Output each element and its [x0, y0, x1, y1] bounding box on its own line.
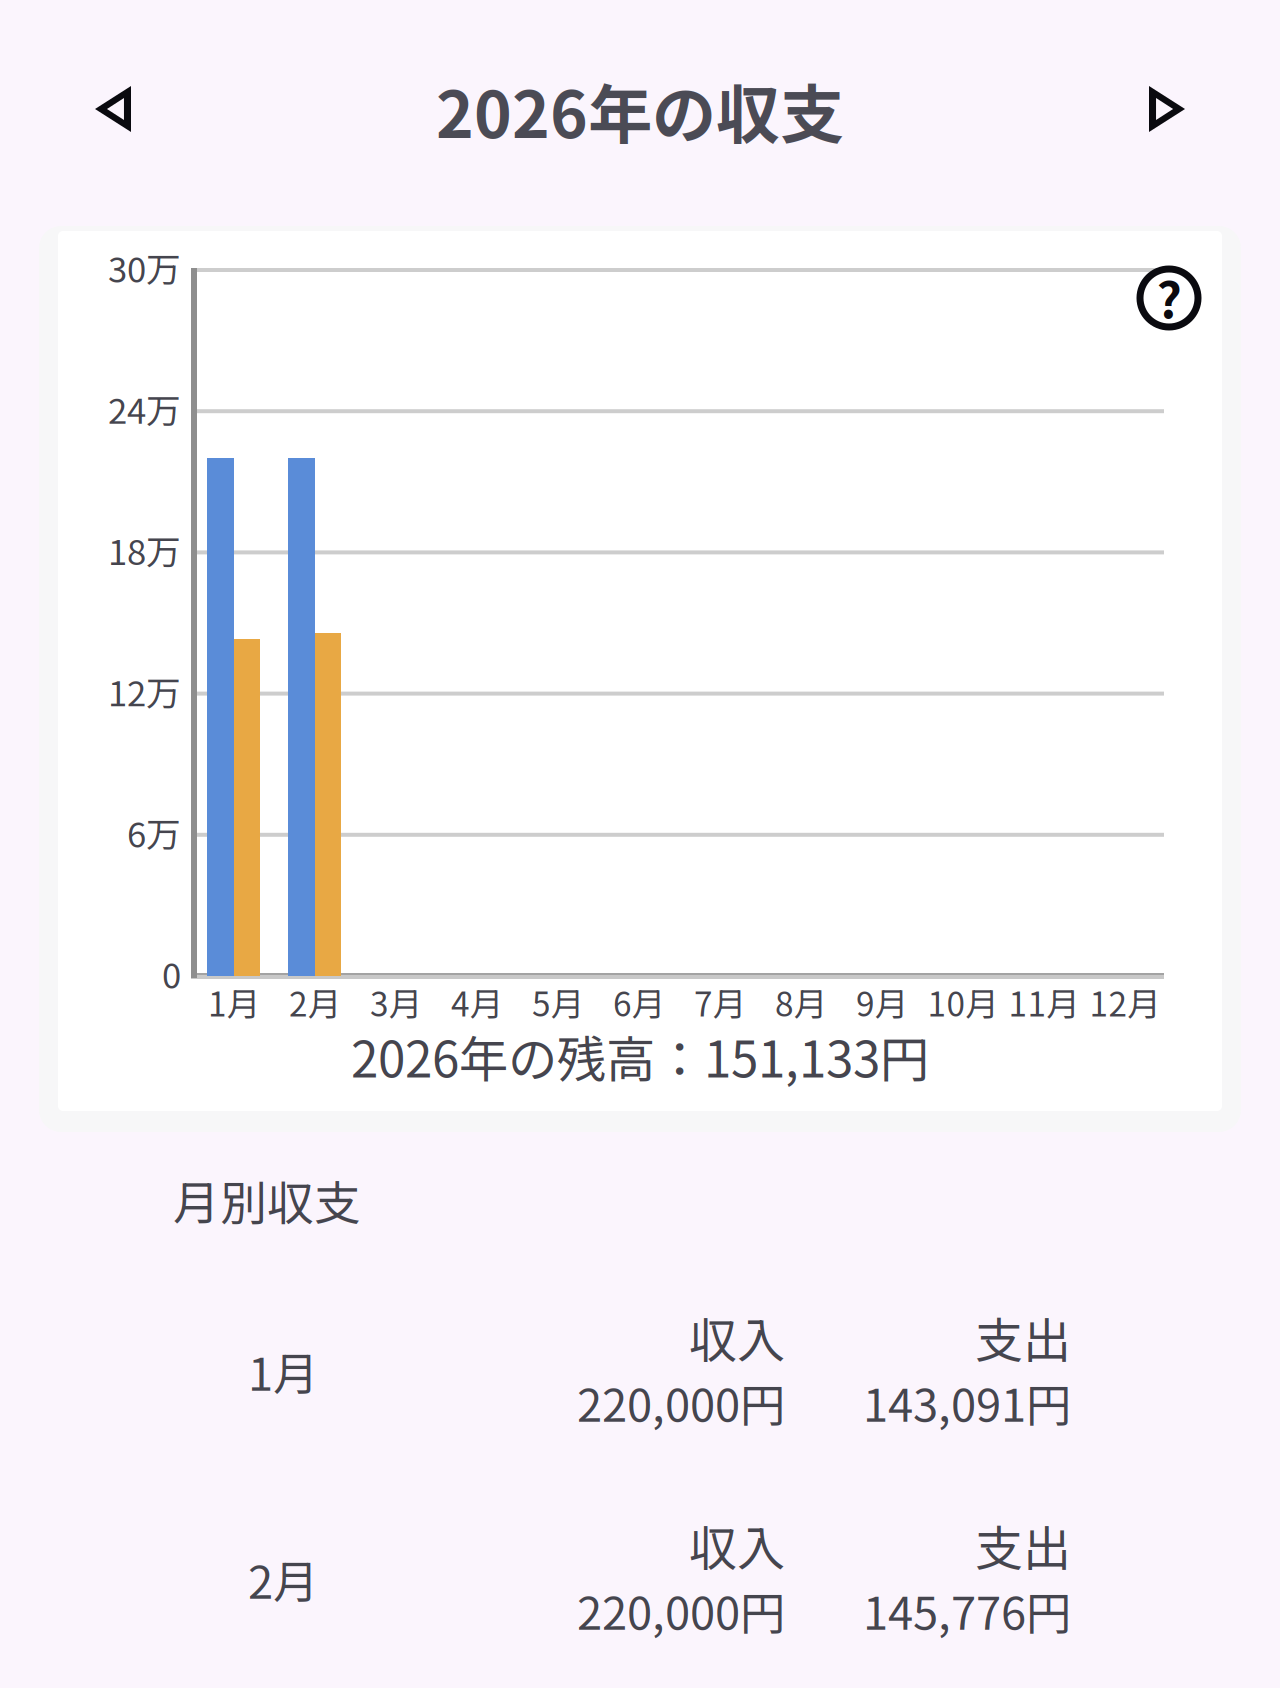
staticText: 11月	[1008, 978, 1079, 1026]
staticText: 24万	[108, 384, 181, 434]
staticText: 支出	[975, 1510, 1071, 1580]
staticText: 1月	[208, 978, 260, 1026]
staticText: 30万	[108, 242, 181, 293]
staticText: 10月	[927, 978, 998, 1026]
staticText: 収入	[689, 1510, 785, 1580]
button[interactable]: Next year	[1107, 49, 1227, 169]
staticText: 220,000円	[577, 1369, 785, 1435]
staticText: 2026年の収支	[436, 64, 844, 156]
button[interactable]: 2月	[0, 0, 1280, 170]
staticText: 4月	[451, 978, 503, 1026]
staticText: 5月	[532, 978, 584, 1026]
staticText: 6月	[613, 978, 665, 1026]
staticText: 2月	[248, 1546, 318, 1612]
staticText: 7月	[694, 978, 746, 1026]
staticText: 9月	[856, 978, 908, 1026]
staticText: 2026年の残高：151,133円	[351, 1020, 929, 1092]
button[interactable]: Help	[1129, 258, 1209, 338]
staticText: 収入	[689, 1302, 785, 1372]
button[interactable]: Previous year	[53, 49, 173, 169]
staticText: 1月	[248, 1338, 318, 1404]
staticText: 18万	[108, 525, 181, 575]
staticText: 2月	[289, 978, 341, 1026]
staticText: 8月	[775, 978, 827, 1026]
staticText: ?	[1156, 261, 1181, 333]
staticText: 月別収支	[173, 1166, 361, 1234]
staticText: 12月	[1089, 978, 1160, 1026]
button[interactable]: 1月	[0, 0, 1280, 170]
staticText: 220,000円	[577, 1577, 785, 1643]
staticText: 支出	[975, 1302, 1071, 1372]
staticText: 145,776円	[863, 1577, 1071, 1643]
staticText: 143,091円	[863, 1369, 1071, 1435]
staticText: 12万	[108, 666, 181, 716]
staticText: 0	[162, 948, 181, 999]
staticText: 6万	[127, 807, 181, 857]
staticText: 3月	[370, 978, 422, 1026]
